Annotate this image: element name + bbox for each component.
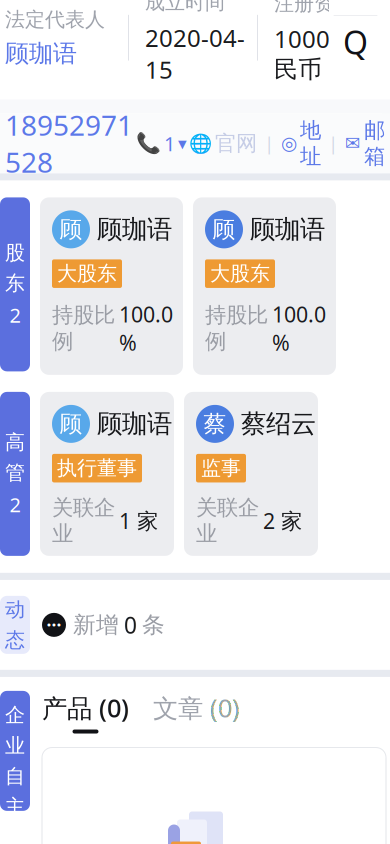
button[interactable]: ··· [42,610,165,640]
staticText: 2020-04-15 [145,22,245,85]
staticText: ▾ [178,133,187,153]
staticText: 顾 [59,215,82,243]
staticText: 顾珈语 [5,39,77,68]
staticText: 蔡 [203,410,226,438]
staticText: | [264,131,274,156]
staticText: 2 [9,491,20,518]
staticText: 高 [5,430,25,455]
button[interactable]: 蔡 [184,392,318,556]
staticText: 1 [164,130,175,157]
staticText: 📞 [136,132,161,155]
button[interactable]: 法定代表人 [0,7,128,68]
staticText: 新增 [73,611,119,639]
staticText: 条 [142,611,165,639]
staticText: 0 [124,610,137,640]
staticText: 法定代表人 [5,7,105,32]
staticText: | [328,131,338,156]
staticText: 成立时间 [145,0,225,15]
staticText: 态 [5,628,25,652]
button[interactable]: 注册资本 [258,0,390,84]
staticText: 大股东 [210,261,270,286]
button[interactable]: Search again [329,16,382,68]
staticText: 1000万人民币 [274,23,378,84]
button[interactable]: ✉ [345,117,385,170]
staticText: 顾 [212,215,235,243]
staticText: Q [343,21,368,63]
staticText: 地址 [300,117,321,170]
staticText: 顾珈语 [97,214,172,245]
staticText: 自 [5,764,25,789]
staticText: 管 [5,461,25,485]
staticText: 顾珈语 [97,408,172,439]
staticText: ◎ [281,133,297,154]
button[interactable]: 成立时间 [129,0,257,85]
staticText: 18952971528 [5,106,133,181]
staticText: 邮箱 [364,117,385,170]
staticText: 顾 [59,410,82,438]
staticText: ··· [46,613,61,636]
staticText: ✉ [345,133,361,154]
button[interactable]: 文章 (0) [153,691,240,733]
staticText: 🌐 [189,133,212,154]
staticText: 执行董事 [57,456,137,480]
staticText: 股 [5,240,25,265]
staticText: 持股比例 [52,302,115,354]
button[interactable]: ◎ [281,117,321,170]
button[interactable]: 顾 [193,197,336,375]
staticText: 2 [9,302,20,328]
staticText: 持股比例 [205,302,268,354]
staticText: 业 [5,733,25,758]
button[interactable]: 产品 (0) [42,691,129,733]
staticText: 100.0% [272,300,326,357]
staticText: 企 [5,703,25,727]
button[interactable]: 🌐 [189,130,257,156]
button[interactable]: 18952971528 [0,106,187,181]
staticText: 动 [5,597,25,622]
staticText: 监事 [201,456,241,480]
staticText: 关联企业 [52,494,115,547]
staticText: 官网 [215,130,257,156]
staticText: 产品 (0) [42,691,129,724]
staticText: 注册资本 [274,0,354,16]
staticText: 2 家 [263,506,302,535]
staticText: 关联企业 [196,494,259,547]
button[interactable]: 顾 [40,197,183,375]
staticText: 东 [5,271,25,296]
staticText: 文章 (0) [153,691,240,724]
staticText: 蔡绍云 [241,408,316,439]
staticText: 顾珈语 [250,214,325,245]
staticText: 大股东 [57,261,117,286]
button[interactable]: 顾 [40,392,174,556]
staticText: 主 [5,795,25,819]
staticText: 100.0% [119,300,173,357]
staticText: 1 家 [119,506,158,535]
